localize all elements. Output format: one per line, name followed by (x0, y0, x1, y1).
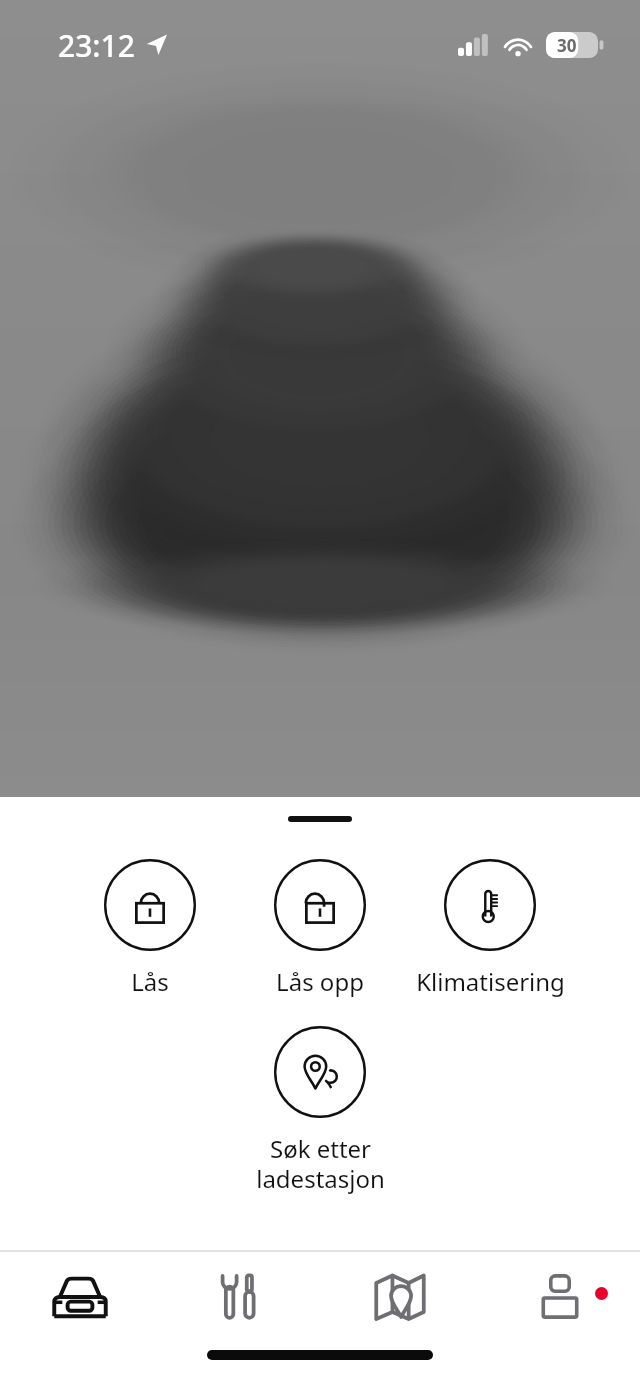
button[interactable]: Klimatisering (405, 859, 575, 998)
staticText: 23:12 (58, 25, 135, 66)
button[interactable]: Lås opp (235, 859, 405, 998)
button[interactable]: Profile (480, 1252, 640, 1342)
button[interactable]: Service (160, 1252, 320, 1342)
button[interactable]: Map (320, 1252, 480, 1342)
staticText: Søk etter ladestasjon (256, 1132, 385, 1195)
button[interactable]: Søk etter ladestasjon (235, 1026, 405, 1195)
button[interactable]: Lås (65, 859, 235, 998)
staticText: Lås (131, 965, 169, 998)
staticText: Lås opp (276, 965, 364, 998)
staticText: 30 (557, 34, 577, 57)
button[interactable]: Car (0, 1252, 160, 1342)
staticText: Klimatisering (416, 965, 565, 998)
